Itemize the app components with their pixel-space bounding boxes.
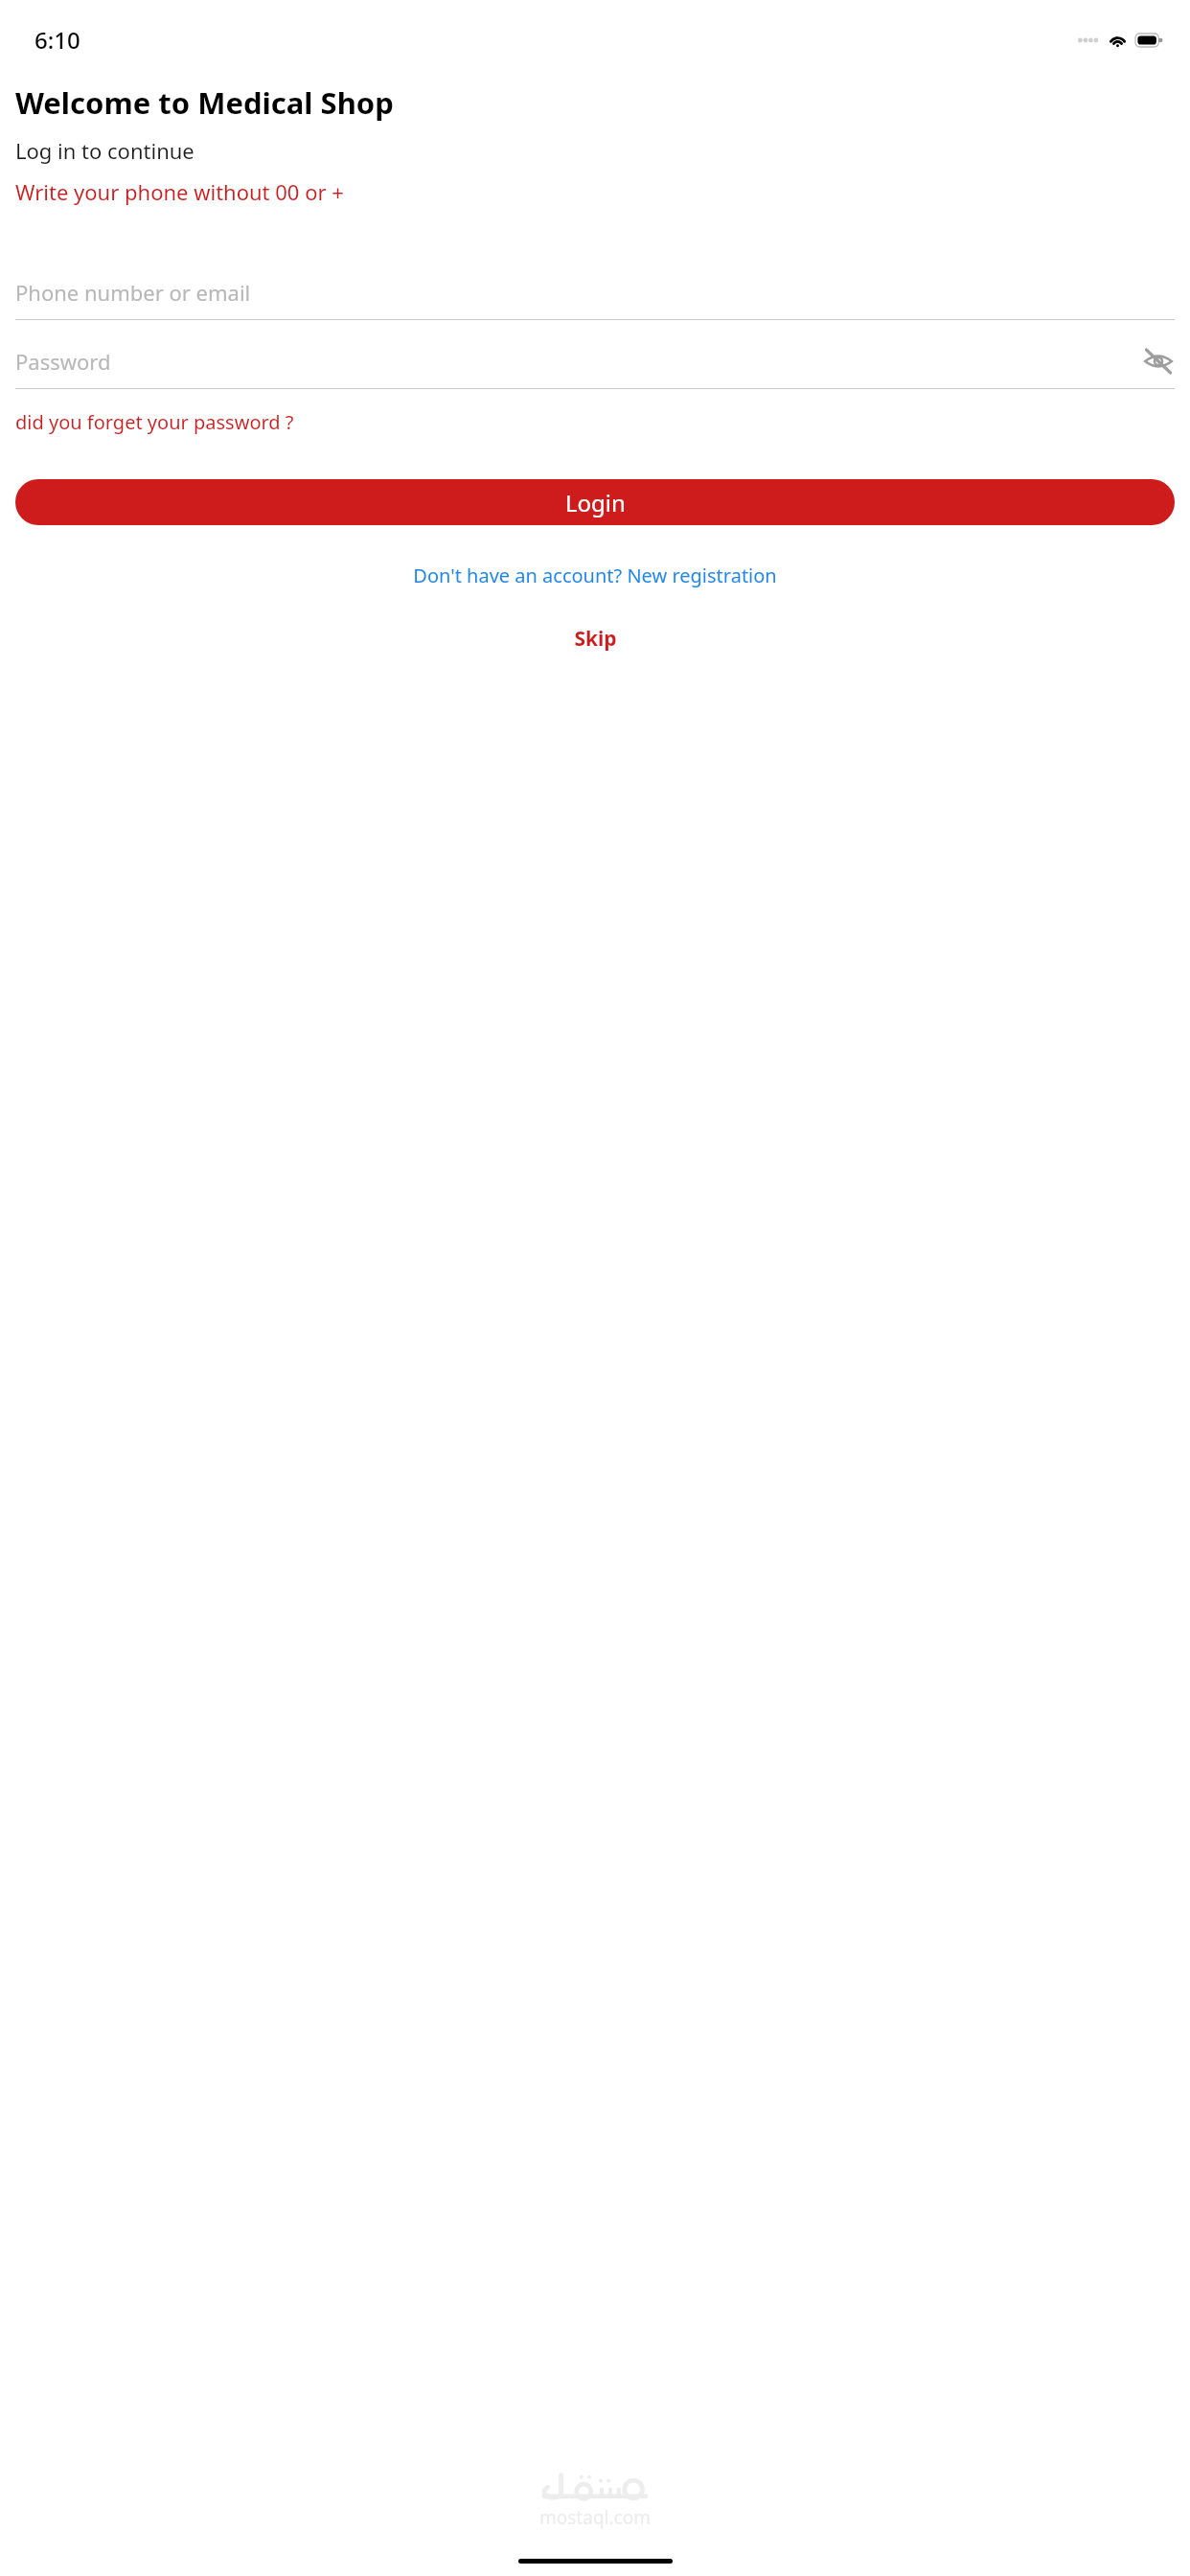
staticText: Login <box>565 487 626 518</box>
staticText: Password <box>15 347 111 376</box>
staticText: Write your phone without 00 or + <box>15 177 344 206</box>
button[interactable]: did you forget your password ? <box>15 405 294 439</box>
staticText: Phone number or email <box>15 278 251 307</box>
staticText: Don't have an account? New registration <box>413 563 777 588</box>
button[interactable]: Skip <box>15 625 1175 653</box>
button[interactable]: Login <box>15 479 1175 525</box>
staticText: Skip <box>574 625 617 653</box>
button[interactable]: Don't have an account? New registration <box>15 563 1175 588</box>
staticText: Log in to continue <box>15 136 195 165</box>
button[interactable]: Password <box>15 334 1175 389</box>
staticText: did you forget your password ? <box>15 409 294 435</box>
button[interactable]: Phone number or email <box>15 265 1175 320</box>
staticText: 6:10 <box>34 24 80 56</box>
staticText: Welcome to Medical Shop <box>15 82 394 123</box>
staticText: mostaql.com <box>539 2505 651 2530</box>
button[interactable]: Show password <box>1142 345 1175 378</box>
